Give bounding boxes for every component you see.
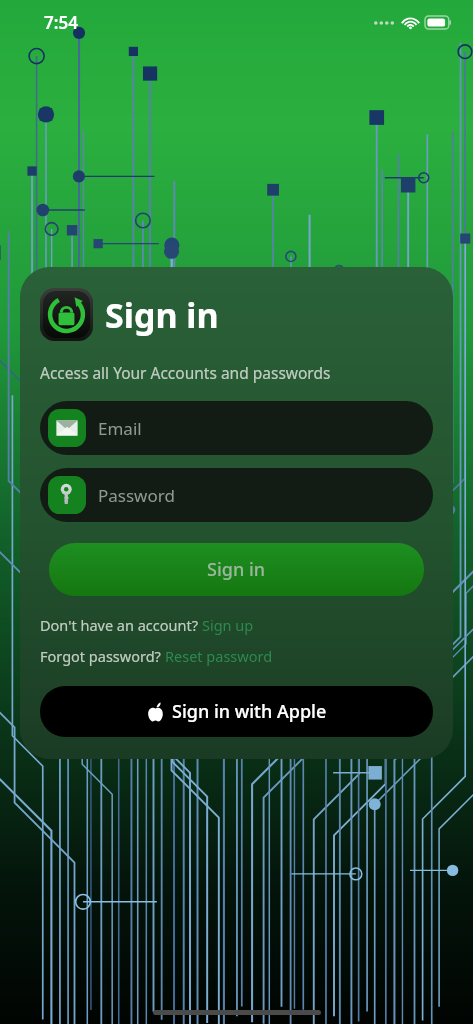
staticText: Reset password — [165, 646, 273, 666]
other: Password — [48, 476, 86, 514]
button[interactable]: Sign up — [202, 615, 254, 635]
button[interactable]: Password — [40, 468, 433, 522]
button[interactable]: Sign in — [49, 543, 424, 596]
staticText: Sign in — [105, 292, 219, 338]
staticText: 7:54 — [44, 11, 78, 34]
staticText: Sign in — [207, 557, 266, 582]
staticText: Forgot password? — [40, 646, 165, 666]
staticText: Password — [98, 484, 175, 507]
staticText: Email — [98, 417, 142, 440]
button[interactable]: Sign in with Apple — [40, 686, 433, 737]
button[interactable]: Email — [40, 401, 433, 455]
staticText: Access all Your Accounts and passwords — [40, 362, 331, 383]
button[interactable]: Reset password — [165, 646, 273, 666]
other: Email — [48, 409, 86, 447]
staticText: Don't have an account? — [40, 615, 202, 635]
staticText: Sign in with Apple — [172, 699, 327, 724]
staticText: Sign up — [202, 615, 254, 635]
